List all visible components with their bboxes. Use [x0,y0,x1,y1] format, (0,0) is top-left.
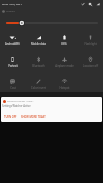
staticText: Color invert [31,86,46,90]
staticText: SHOW MORE TOAST [21,115,46,119]
button[interactable]: Mobile data [25,29,51,51]
staticText: 20:32 • Thu, Mar 1 [2,2,23,5]
button[interactable]: Airplane mode [51,51,77,73]
staticText: Bluetooth [32,64,45,68]
staticText: Location off [83,64,98,68]
button[interactable]: Portrait [0,51,25,73]
staticText: Android [6,10,15,13]
button[interactable]: Hotspot [51,73,77,95]
button[interactable]: Bluetooth [25,51,51,73]
button[interactable]: Color invert [25,73,51,95]
staticText: Settings Watcher • now • [7,100,34,103]
staticText: Portrait [8,64,18,68]
staticText: Mobile data [31,42,46,46]
staticText: Cast [10,86,16,90]
staticText: Airplane mode [55,64,74,68]
staticText: AndroidWifi [5,42,20,46]
button[interactable]: AndroidWifi [0,29,25,51]
button[interactable]: TURN OFF [2,115,19,119]
staticText: Settings Watcher Active [2,104,31,108]
staticText: Hotspot [59,86,70,90]
button[interactable]: SHOW MORE TOAST [19,115,48,119]
button[interactable]: Flashlight [77,29,103,51]
button[interactable]: 86% [51,29,77,51]
staticText: Flashlight [84,42,97,46]
staticText: TURN OFF [4,115,17,119]
button[interactable]: Cast [0,73,25,95]
button[interactable]: Location off [77,51,103,73]
staticText: 86% [61,42,67,46]
